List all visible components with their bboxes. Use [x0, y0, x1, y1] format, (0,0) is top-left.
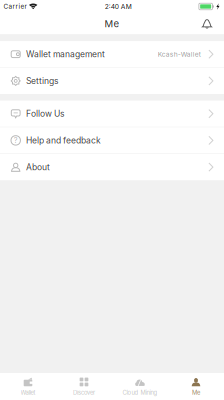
staticText: Discover: [73, 389, 95, 396]
staticText: Me: [192, 389, 200, 396]
button[interactable]: Discover: [56, 372, 112, 400]
staticText: Wallet: [20, 389, 35, 396]
staticText: Wallet management: [26, 49, 105, 59]
staticText: Help and feedback: [26, 135, 101, 145]
staticText: Follow Us: [26, 108, 65, 119]
staticText: Settings: [26, 76, 59, 86]
staticText: Cloud Mining: [122, 389, 157, 396]
staticText: Carrier: [4, 3, 27, 10]
button[interactable]: ?: [0, 127, 224, 154]
button[interactable]: Me: [168, 372, 224, 400]
button[interactable]: Cloud Mining: [112, 372, 168, 400]
button[interactable]: About: [0, 154, 224, 180]
button[interactable]: Notifications: [190, 13, 224, 34]
staticText: ?: [14, 136, 18, 145]
staticText: 2:40 AM: [105, 2, 132, 11]
button[interactable]: Wallet: [0, 372, 56, 400]
button[interactable]: Settings: [0, 68, 224, 94]
staticText: Me: [104, 18, 119, 29]
button[interactable]: Wallet management: [0, 41, 224, 68]
button[interactable]: Follow Us: [0, 101, 224, 127]
staticText: About: [26, 162, 50, 172]
staticText: Kcash-Wallet: [158, 50, 201, 58]
